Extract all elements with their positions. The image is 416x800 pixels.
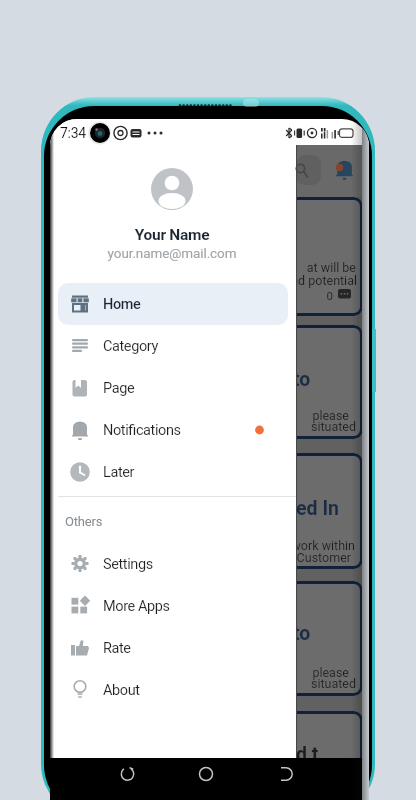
staticText: About — [103, 682, 223, 699]
button[interactable] — [112, 759, 144, 789]
button[interactable] — [336, 159, 354, 179]
staticText: Your Name — [92, 226, 252, 244]
button[interactable] — [58, 543, 288, 585]
button[interactable] — [58, 283, 288, 325]
button[interactable] — [58, 367, 288, 409]
button[interactable] — [58, 627, 288, 669]
staticText: Home — [103, 296, 183, 313]
staticText: nd potential — [267, 273, 357, 288]
staticText: Others — [65, 514, 135, 529]
staticText: 7:34 — [60, 125, 100, 141]
button[interactable] — [296, 155, 321, 185]
staticText: d t — [296, 743, 356, 766]
staticText: please — [259, 408, 349, 423]
staticText: Category — [103, 338, 223, 355]
staticText: your.name@mail.com — [92, 245, 252, 261]
button[interactable] — [190, 759, 222, 789]
button[interactable] — [58, 669, 288, 711]
button[interactable] — [58, 409, 288, 451]
staticText: situated — [266, 419, 356, 434]
staticText: work within — [265, 538, 355, 553]
staticText: ed In — [296, 497, 356, 520]
staticText: at will be — [266, 260, 356, 275]
staticText: Rate — [103, 640, 223, 657]
button[interactable] — [58, 451, 288, 493]
staticText: to — [293, 622, 343, 645]
staticText: situated — [266, 676, 356, 691]
staticText: Notifications — [103, 422, 223, 439]
staticText: Page — [103, 380, 223, 397]
button[interactable] — [270, 759, 302, 789]
button[interactable] — [58, 325, 288, 367]
button[interactable] — [58, 585, 288, 627]
staticText: Later — [103, 464, 223, 481]
staticText: More Apps — [103, 598, 223, 615]
staticText: Customer — [261, 550, 351, 565]
staticText: Settings — [103, 556, 223, 573]
staticText: please — [259, 665, 349, 680]
button[interactable] — [110, 164, 235, 264]
staticText: 0 — [263, 289, 333, 302]
staticText: to — [293, 368, 343, 391]
